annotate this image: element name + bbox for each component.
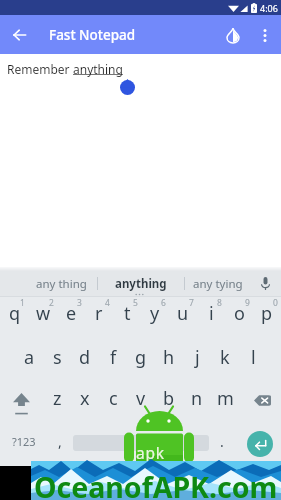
button[interactable]: 3 — [57, 297, 85, 337]
button[interactable]: a — [15, 337, 43, 378]
button[interactable]: b — [155, 378, 183, 419]
staticText: w — [36, 301, 51, 326]
staticText: 5 — [133, 297, 138, 309]
staticText: f — [110, 345, 117, 370]
staticText: any thing — [36, 276, 87, 292]
button[interactable]: s — [43, 337, 71, 378]
button[interactable]: m — [211, 378, 239, 419]
button[interactable]: Voice input — [250, 271, 281, 296]
button[interactable]: v — [127, 378, 155, 419]
staticText: 1 — [20, 297, 25, 309]
button[interactable]: 5 — [113, 297, 141, 337]
staticText: 4 — [105, 297, 110, 309]
staticText: p — [261, 301, 273, 326]
staticText: k — [220, 345, 230, 370]
staticText: y — [150, 301, 160, 326]
button[interactable]: any thing — [0, 271, 97, 296]
button[interactable]: 7 — [169, 297, 197, 337]
button[interactable]: c — [99, 378, 127, 419]
staticText: i — [209, 301, 214, 326]
button[interactable]: j — [183, 337, 211, 378]
staticText: j — [195, 345, 200, 370]
staticText: 6 — [161, 297, 166, 309]
staticText: u — [177, 301, 189, 326]
staticText: OceanofAPK.com — [34, 468, 278, 500]
staticText: d — [79, 345, 91, 370]
staticText: , — [58, 432, 62, 451]
staticText: ?123 — [12, 434, 36, 449]
button[interactable]: 4 — [85, 297, 113, 337]
button[interactable]: any tying — [185, 271, 251, 296]
staticText: v — [136, 386, 146, 411]
button[interactable]: 0 — [253, 297, 281, 337]
staticText: . — [220, 432, 224, 451]
button[interactable]: f — [99, 337, 127, 378]
staticText: g — [135, 345, 147, 370]
button[interactable]: 6 — [141, 297, 169, 337]
staticText: 0 — [273, 297, 278, 309]
button[interactable]: Space — [73, 435, 209, 451]
staticText: c — [109, 386, 118, 411]
staticText: l — [251, 345, 256, 370]
staticText: anything — [115, 276, 167, 292]
button[interactable]: 1 — [0, 297, 29, 337]
staticText: any tying — [193, 276, 243, 292]
staticText: q — [9, 301, 21, 326]
button[interactable]: k — [211, 337, 239, 378]
staticText: e — [66, 301, 77, 326]
button[interactable]: . — [209, 419, 235, 469]
staticText: o — [234, 301, 245, 326]
button[interactable]: Backspace — [239, 378, 281, 419]
staticText: 3 — [77, 297, 82, 309]
button[interactable]: 2 — [29, 297, 57, 337]
staticText: anything — [73, 61, 123, 77]
button[interactable]: 8 — [197, 297, 225, 337]
button[interactable]: 9 — [225, 297, 253, 337]
staticText: x — [80, 386, 90, 411]
button[interactable]: n — [183, 378, 211, 419]
staticText: a — [24, 345, 35, 370]
staticText: m — [217, 386, 234, 411]
staticText: 4:06 — [260, 2, 278, 14]
staticText: 2 — [49, 297, 54, 309]
staticText: 9 — [245, 297, 250, 309]
button[interactable]: g — [127, 337, 155, 378]
staticText: n — [191, 386, 203, 411]
staticText: r — [95, 301, 103, 326]
button[interactable]: anything — [98, 271, 184, 296]
staticText: t — [124, 301, 131, 326]
staticText: 8 — [217, 297, 222, 309]
staticText: Fast Notepad — [49, 26, 136, 44]
staticText: b — [163, 386, 175, 411]
staticText: Remember — [7, 61, 73, 77]
staticText: apk — [136, 442, 165, 463]
button[interactable]: Enter — [247, 431, 273, 457]
button[interactable]: Back — [4, 19, 35, 50]
button[interactable]: Toggle theme — [218, 20, 248, 50]
button[interactable]: Shift — [0, 378, 43, 419]
button[interactable]: , — [47, 419, 73, 469]
button[interactable]: More options — [250, 20, 280, 50]
button[interactable]: z — [43, 378, 71, 419]
staticText: z — [53, 386, 62, 411]
staticText: 7 — [189, 297, 194, 309]
button[interactable]: ?123 — [0, 419, 47, 469]
staticText: h — [163, 345, 175, 370]
staticText: s — [53, 345, 62, 370]
button[interactable]: l — [239, 337, 267, 378]
button[interactable]: x — [71, 378, 99, 419]
button[interactable]: d — [71, 337, 99, 378]
button[interactable]: h — [155, 337, 183, 378]
